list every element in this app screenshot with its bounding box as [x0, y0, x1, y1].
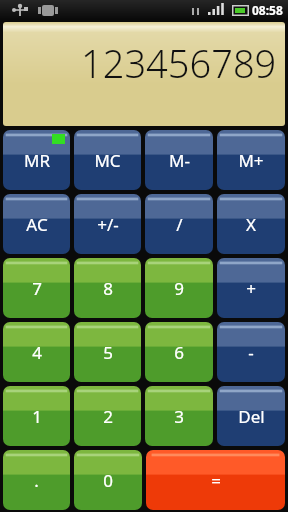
staticText: MC [94, 149, 121, 172]
staticText: M+ [238, 149, 264, 172]
staticText: 4 [32, 341, 42, 364]
staticText: MR [24, 149, 50, 172]
button[interactable]: Del [217, 386, 285, 446]
staticText: 9 [174, 277, 184, 300]
button[interactable]: 0 [74, 450, 142, 510]
button[interactable]: 2 [74, 386, 141, 446]
button[interactable]: 1 [3, 386, 70, 446]
staticText: 8 [103, 277, 113, 300]
button[interactable]: . [3, 450, 70, 510]
button[interactable]: M- [145, 130, 213, 190]
staticText: AC [26, 213, 48, 236]
button[interactable]: M+ [217, 130, 285, 190]
button[interactable]: = [146, 450, 285, 510]
button[interactable]: 123456789 [3, 22, 285, 126]
button[interactable]: / [145, 194, 213, 254]
button[interactable]: + [217, 258, 285, 318]
button[interactable]: X [217, 194, 285, 254]
staticText: 1 [32, 405, 42, 428]
staticText: +/- [97, 213, 119, 236]
staticText: / [176, 213, 183, 236]
staticText: 5 [103, 341, 113, 364]
button[interactable]: MC [74, 130, 141, 190]
button[interactable]: +/- [74, 194, 141, 254]
staticText: 0 [103, 469, 113, 492]
button[interactable]: 4 [3, 322, 70, 382]
button[interactable]: 3 [145, 386, 213, 446]
staticText: 08:58 [252, 2, 283, 18]
staticText: + [246, 277, 256, 300]
staticText: 6 [174, 341, 184, 364]
staticText: M- [169, 149, 190, 172]
button[interactable]: 8 [74, 258, 141, 318]
button[interactable]: AC [3, 194, 70, 254]
staticText: - [248, 341, 254, 364]
staticText: Del [238, 405, 265, 428]
button[interactable]: 5 [74, 322, 141, 382]
staticText: 2 [103, 405, 113, 428]
button[interactable]: 9 [145, 258, 213, 318]
button[interactable]: 7 [3, 258, 70, 318]
staticText: 7 [32, 277, 42, 300]
button[interactable]: MR [3, 130, 70, 190]
staticText: . [34, 469, 39, 492]
staticText: 3 [174, 405, 184, 428]
staticText: 123456789 [81, 37, 277, 89]
button[interactable]: 6 [145, 322, 213, 382]
button[interactable]: - [217, 322, 285, 382]
staticText: X [246, 213, 256, 236]
staticText: = [211, 469, 221, 492]
